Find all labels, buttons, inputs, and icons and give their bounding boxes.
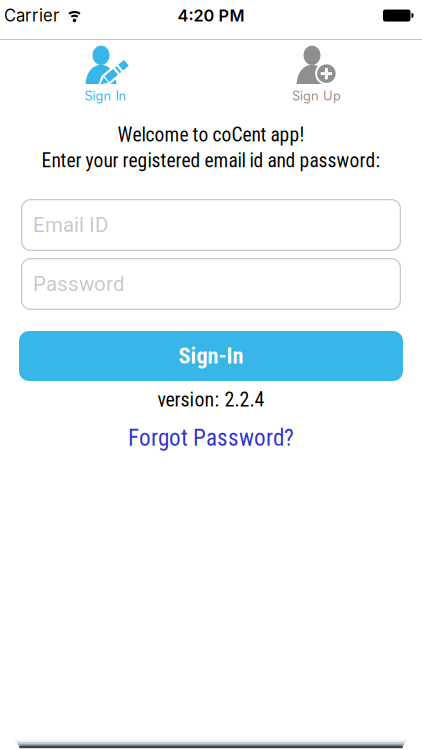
- staticText: Sign In: [84, 88, 126, 103]
- staticText: 4:20 PM: [177, 6, 244, 25]
- staticText: version: 2.2.4: [157, 388, 264, 411]
- button[interactable]: Sign-In: [19, 331, 403, 381]
- button[interactable]: Password: [21, 258, 401, 310]
- button[interactable]: Email ID: [21, 199, 401, 251]
- button[interactable]: Sign In: [0, 44, 211, 103]
- button[interactable]: Sign Up: [211, 44, 422, 103]
- staticText: Welcome to coCent app!: [117, 123, 304, 146]
- staticText: Forgot Password?: [128, 424, 294, 451]
- staticText: Carrier: [4, 5, 59, 26]
- staticText: Enter your registered email id and passw…: [41, 149, 380, 172]
- staticText: Sign-In: [178, 343, 243, 369]
- staticText: Email ID: [33, 213, 108, 237]
- button[interactable]: Forgot Password?: [128, 424, 294, 451]
- staticText: Password: [33, 272, 125, 296]
- staticText: Sign Up: [292, 88, 341, 103]
